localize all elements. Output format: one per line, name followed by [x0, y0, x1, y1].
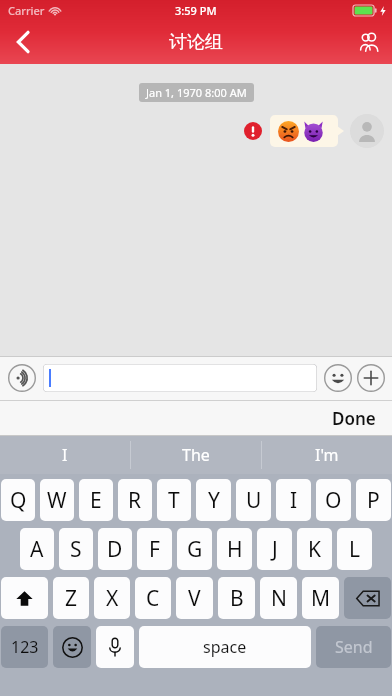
button[interactable]: Voice message — [6, 362, 38, 394]
staticText: G — [187, 535, 203, 564]
button[interactable]: F — [137, 528, 172, 570]
button[interactable] — [43, 364, 317, 392]
staticText: Z — [65, 584, 78, 613]
button[interactable]: O — [316, 479, 351, 521]
button[interactable]: R — [118, 479, 152, 521]
staticText: F — [149, 535, 160, 564]
button[interactable]: I'm — [262, 436, 392, 474]
button[interactable]: Emoji keyboard — [53, 626, 91, 668]
staticText: X — [106, 584, 119, 613]
staticText: B — [230, 584, 244, 613]
staticText: L — [349, 535, 361, 564]
staticText: N — [271, 584, 287, 613]
button[interactable]: Y — [196, 479, 231, 521]
staticText: U — [246, 486, 262, 515]
button[interactable]: Emoji — [323, 363, 353, 393]
staticText: Q — [10, 486, 27, 515]
staticText: W — [47, 486, 67, 515]
button[interactable]: S — [59, 528, 93, 570]
button[interactable]: Add attachment — [356, 363, 386, 393]
button[interactable]: Send — [316, 626, 391, 668]
button[interactable]: H — [217, 528, 252, 570]
button[interactable]: W — [40, 479, 74, 521]
button[interactable]: B — [218, 577, 255, 619]
button[interactable]: T — [157, 479, 191, 521]
staticText: Y — [208, 486, 220, 515]
staticText: Carrier — [8, 3, 45, 18]
button[interactable]: I — [0, 436, 130, 474]
staticText: space — [203, 636, 247, 658]
staticText: A — [30, 535, 44, 564]
staticText: I'm — [315, 444, 339, 466]
button[interactable]: E — [79, 479, 113, 521]
button[interactable]: Dictation — [96, 626, 134, 668]
button[interactable]: V — [176, 577, 213, 619]
button[interactable]: Shift — [1, 577, 48, 619]
staticText: C — [146, 584, 160, 613]
button[interactable]: Avatar — [350, 114, 384, 148]
button[interactable]: 123 — [1, 626, 48, 668]
staticText: 123 — [11, 636, 39, 658]
button[interactable]: J — [257, 528, 292, 570]
button[interactable]: N — [260, 577, 297, 619]
staticText: H — [227, 535, 243, 564]
staticText: K — [308, 535, 321, 564]
button[interactable]: Q — [1, 479, 35, 521]
button[interactable]: X — [94, 577, 130, 619]
staticText: S — [70, 535, 82, 564]
staticText: P — [367, 486, 380, 515]
staticText: Done — [332, 407, 376, 430]
button[interactable]: Resend failed message — [243, 121, 263, 141]
staticText: T — [168, 486, 180, 515]
staticText: R — [128, 486, 142, 515]
button[interactable]: A — [20, 528, 54, 570]
staticText: The — [182, 444, 210, 466]
button[interactable]: Z — [53, 577, 89, 619]
button[interactable]: U — [236, 479, 271, 521]
staticText: Send — [335, 636, 373, 658]
button[interactable]: P — [356, 479, 391, 521]
button[interactable]: I — [276, 479, 311, 521]
button[interactable]: G — [177, 528, 212, 570]
button[interactable]: Members — [346, 20, 392, 64]
staticText: D — [107, 535, 123, 564]
button[interactable]: Backspace — [344, 577, 391, 619]
button[interactable]: Back — [0, 20, 46, 64]
button[interactable]: L — [337, 528, 372, 570]
staticText: 3:59 PM — [175, 3, 217, 18]
staticText: I — [62, 444, 68, 466]
staticText: 讨论组 — [169, 31, 223, 54]
staticText: V — [188, 584, 201, 613]
button[interactable]: space — [139, 626, 311, 668]
button[interactable]: Done — [326, 403, 382, 434]
button[interactable]: C — [135, 577, 171, 619]
button[interactable]: M — [302, 577, 339, 619]
staticText: Jan 1, 1970 8:00 AM — [146, 85, 247, 100]
button[interactable]: K — [297, 528, 332, 570]
staticText: J — [272, 535, 278, 564]
staticText: O — [325, 486, 342, 515]
staticText: I — [290, 486, 298, 515]
button[interactable]: The — [131, 436, 261, 474]
staticText: M — [311, 584, 331, 613]
button[interactable]: D — [98, 528, 132, 570]
staticText: E — [90, 486, 102, 515]
